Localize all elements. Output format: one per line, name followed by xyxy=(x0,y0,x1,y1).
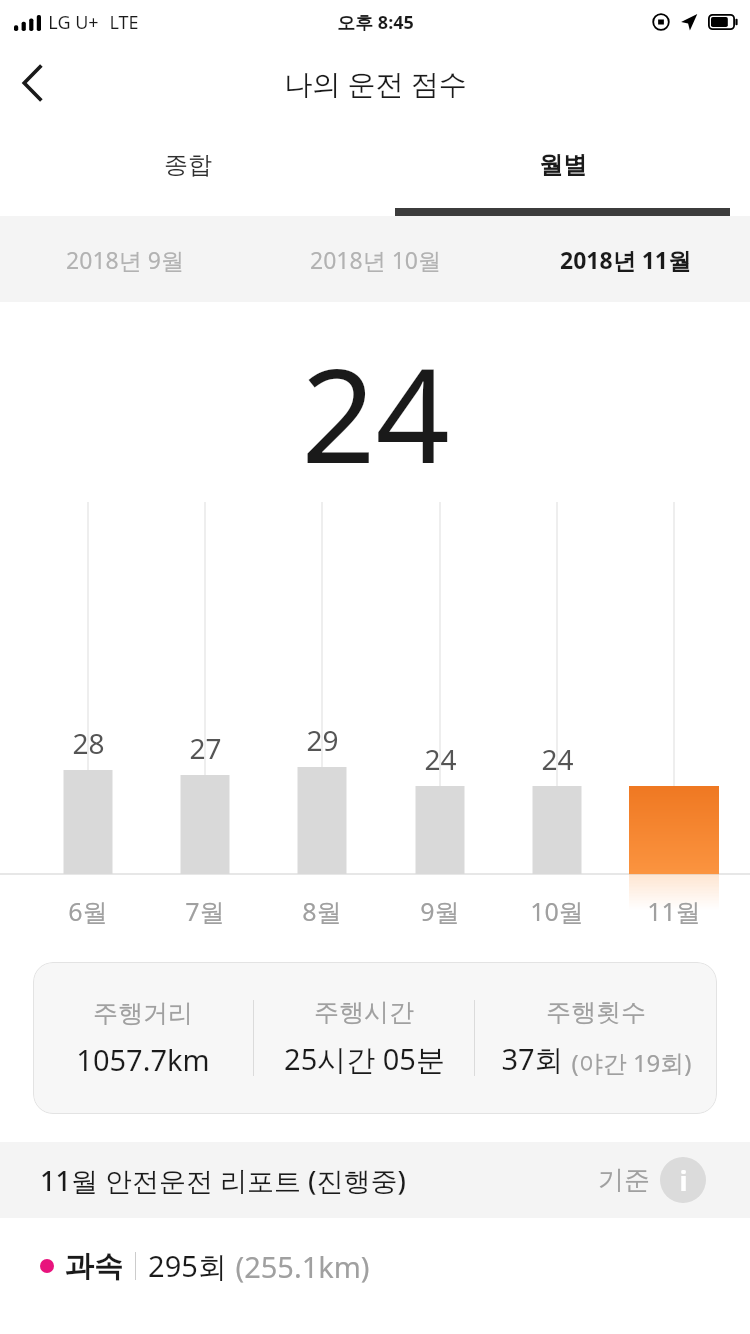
button[interactable]: 과속 xyxy=(40,1246,750,1286)
staticText: 28 xyxy=(72,724,105,762)
staticText: 29 xyxy=(306,721,339,759)
staticText: 295회 xyxy=(148,1246,227,1286)
staticText: 오후 8:45 xyxy=(337,10,414,35)
staticText: 10월 xyxy=(530,894,584,928)
staticText: 24 xyxy=(424,740,457,778)
staticText: 27 xyxy=(189,729,222,767)
staticText: 월별 xyxy=(539,150,587,180)
button[interactable]: 종합 xyxy=(0,122,375,208)
staticText: 주행횟수 xyxy=(546,997,646,1028)
staticText: 종합 xyxy=(164,150,212,180)
staticText: i xyxy=(679,1162,688,1199)
staticText: 25시간 05분 xyxy=(284,1039,445,1079)
staticText: 나의 운전 점수 xyxy=(284,64,467,102)
button[interactable]: 2018년 10월 xyxy=(250,216,500,302)
staticText: (야간 19회) xyxy=(571,1046,692,1079)
staticText: 7월 xyxy=(185,894,225,928)
staticText: 2018년 10월 xyxy=(310,244,441,275)
button[interactable]: 2018년 9월 xyxy=(0,216,250,302)
staticText: 2018년 9월 xyxy=(66,244,184,275)
staticText: 8월 xyxy=(302,894,342,928)
staticText: 주행거리 xyxy=(93,998,193,1029)
button[interactable]: 월별 xyxy=(375,122,750,208)
staticText: 37회 xyxy=(501,1039,564,1079)
staticText: 9월 xyxy=(420,894,460,928)
button[interactable]: 주행거리 xyxy=(33,962,717,1114)
staticText: 2018년 11월 xyxy=(560,244,691,275)
staticText: 6월 xyxy=(68,894,108,928)
staticText: LG U+ xyxy=(48,10,99,35)
button[interactable]: 11월 안전운전 리포트 (진행중) xyxy=(0,1142,750,1218)
staticText: LTE xyxy=(109,10,139,35)
staticText: 주행시간 xyxy=(314,997,414,1028)
button[interactable]: 기준 정보 xyxy=(660,1157,706,1203)
staticText: 과속 xyxy=(65,1248,123,1285)
staticText: (255.1km) xyxy=(235,1247,370,1286)
staticText: 11월 xyxy=(647,894,701,928)
staticText: 24 xyxy=(541,740,574,778)
staticText: 24 xyxy=(301,324,450,501)
staticText: 11월 안전운전 리포트 (진행중) xyxy=(40,1162,406,1199)
button[interactable]: 2018년 11월 xyxy=(500,216,750,302)
staticText: 1057.7km xyxy=(76,1040,210,1079)
staticText: 기준 xyxy=(598,1164,650,1197)
button[interactable]: 뒤로 xyxy=(0,50,66,116)
